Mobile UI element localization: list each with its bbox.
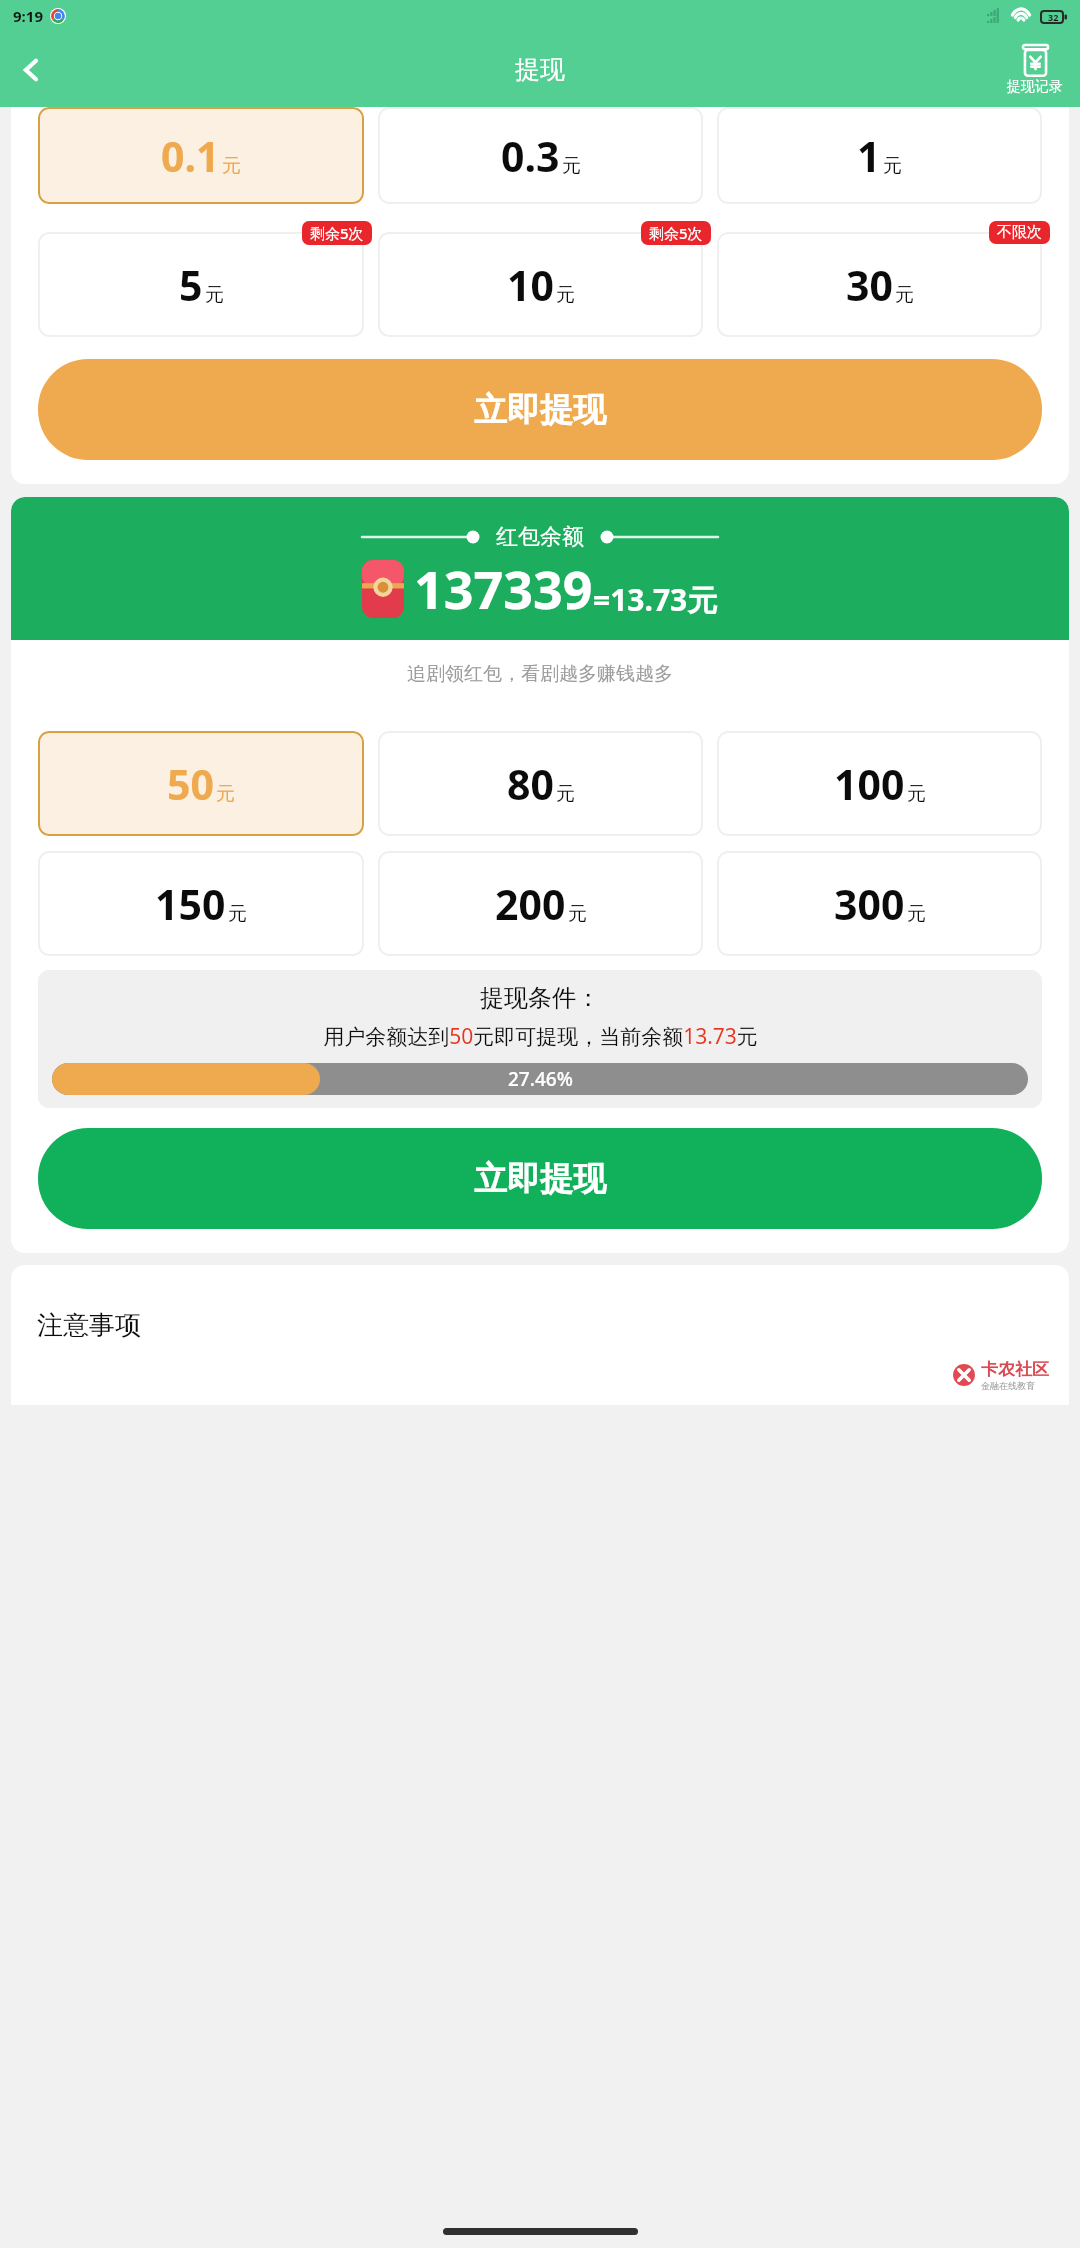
staticText: 元 xyxy=(228,902,247,926)
button[interactable]: 5 xyxy=(38,232,364,337)
staticText: 30 xyxy=(846,257,893,313)
staticText: 0.1 xyxy=(161,128,220,184)
staticText: 立即提现 xyxy=(474,389,606,431)
staticText: 红包余额 xyxy=(496,523,584,551)
button[interactable]: 30 xyxy=(717,232,1042,337)
staticText: 9:19 xyxy=(13,6,43,26)
staticText: 用户余额达到50元即可提现，当前余额13.73元 xyxy=(323,1022,758,1051)
staticText: 元 xyxy=(883,154,902,178)
staticText: 不限次 xyxy=(997,223,1042,242)
staticText: 元 xyxy=(907,782,926,806)
staticText: 10 xyxy=(507,257,554,313)
button[interactable]: Back xyxy=(6,44,58,96)
button[interactable]: 0.3 xyxy=(378,107,703,204)
staticText: 32 xyxy=(1048,11,1059,23)
staticText: 100 xyxy=(834,756,905,812)
button[interactable]: 立即提现 xyxy=(38,359,1042,460)
staticText: 5 xyxy=(179,257,203,313)
staticText: 剩余5次 xyxy=(649,223,703,243)
staticText: 137339 xyxy=(414,553,593,624)
staticText: 卡农社区 xyxy=(981,1359,1049,1380)
staticText: 追剧领红包，看剧越多赚钱越多 xyxy=(11,662,1069,686)
staticText: 300 xyxy=(834,876,905,932)
staticText: 1 xyxy=(857,128,881,184)
button[interactable]: 150 xyxy=(38,851,364,956)
staticText: 50 xyxy=(167,756,214,812)
staticText: 金融在线教育 xyxy=(981,1380,1035,1391)
staticText: 元 xyxy=(216,782,235,806)
staticText: 立即提现 xyxy=(474,1158,606,1200)
staticText: 元 xyxy=(556,283,575,307)
staticText: 80 xyxy=(507,756,554,812)
staticText: =13.73元 xyxy=(593,579,718,620)
button[interactable]: 100 xyxy=(717,731,1042,836)
staticText: 150 xyxy=(155,876,226,932)
button[interactable]: 80 xyxy=(378,731,703,836)
staticText: 元 xyxy=(907,902,926,926)
staticText: 剩余5次 xyxy=(310,223,364,243)
button[interactable]: 立即提现 xyxy=(38,1128,1042,1229)
button[interactable]: 0.1 xyxy=(38,107,364,204)
staticText: 元 xyxy=(895,283,914,307)
staticText: 200 xyxy=(495,876,566,932)
staticText: 27.46% xyxy=(508,1066,573,1092)
button[interactable]: 200 xyxy=(378,851,703,956)
button[interactable]: 提现记录 xyxy=(1004,44,1066,96)
staticText: 元 xyxy=(562,154,581,178)
staticText: 注意事项 xyxy=(37,1309,141,1342)
staticText: 元 xyxy=(556,782,575,806)
staticText: 元 xyxy=(568,902,587,926)
button[interactable]: 300 xyxy=(717,851,1042,956)
button[interactable]: 1 xyxy=(717,107,1042,204)
button[interactable]: 50 xyxy=(38,731,364,836)
button[interactable]: 10 xyxy=(378,232,703,337)
staticText: 提现条件： xyxy=(480,983,600,1013)
staticText: 0.3 xyxy=(501,128,560,184)
staticText: 提现记录 xyxy=(1007,78,1063,96)
staticText: 元 xyxy=(205,283,224,307)
staticText: 提现 xyxy=(515,54,565,85)
staticText: 元 xyxy=(222,154,241,178)
